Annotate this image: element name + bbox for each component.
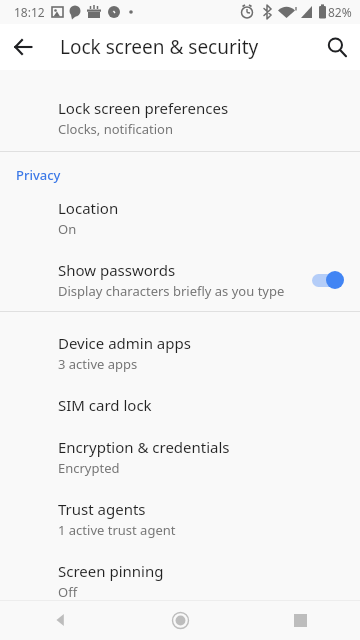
button[interactable]: Search <box>314 24 360 70</box>
button[interactable]: SIM card lock <box>0 395 360 415</box>
staticText: Encryption & credentials <box>58 437 230 457</box>
staticText: 1 active trust agent <box>58 521 176 539</box>
staticText: Show passwords <box>58 260 176 280</box>
button[interactable]: Screen pinning <box>0 561 360 600</box>
staticText: Lock screen preferences <box>58 98 229 118</box>
staticText: Display characters briefly as you type <box>58 282 285 300</box>
button[interactable]: Back <box>0 600 120 640</box>
button[interactable]: Back <box>0 24 46 70</box>
staticText: Device admin apps <box>58 333 191 353</box>
button[interactable]: Location <box>0 198 360 238</box>
button[interactable]: Show passwords <box>0 260 360 300</box>
button[interactable]: Home <box>120 600 240 640</box>
button[interactable]: Device admin apps <box>0 333 360 373</box>
button[interactable]: Encryption & credentials <box>0 437 360 477</box>
staticText: Clocks, notification <box>58 120 173 138</box>
staticText: Off <box>58 583 78 600</box>
staticText: 18:12 <box>14 4 45 20</box>
button[interactable]: Lock screen preferences <box>0 78 360 146</box>
staticText: Location <box>58 198 119 218</box>
staticText: On <box>58 220 77 238</box>
staticText: 82% <box>328 4 352 20</box>
button[interactable]: Trust agents <box>0 499 360 539</box>
staticText: Screen pinning <box>58 561 164 581</box>
staticText: Privacy <box>16 166 61 184</box>
staticText: Encrypted <box>58 459 120 477</box>
staticText: 3 active apps <box>58 355 138 373</box>
button[interactable]: Recent apps <box>240 600 360 640</box>
staticText: Trust agents <box>58 499 146 519</box>
staticText: Lock screen & security <box>60 34 259 60</box>
staticText: SIM card lock <box>58 395 152 415</box>
